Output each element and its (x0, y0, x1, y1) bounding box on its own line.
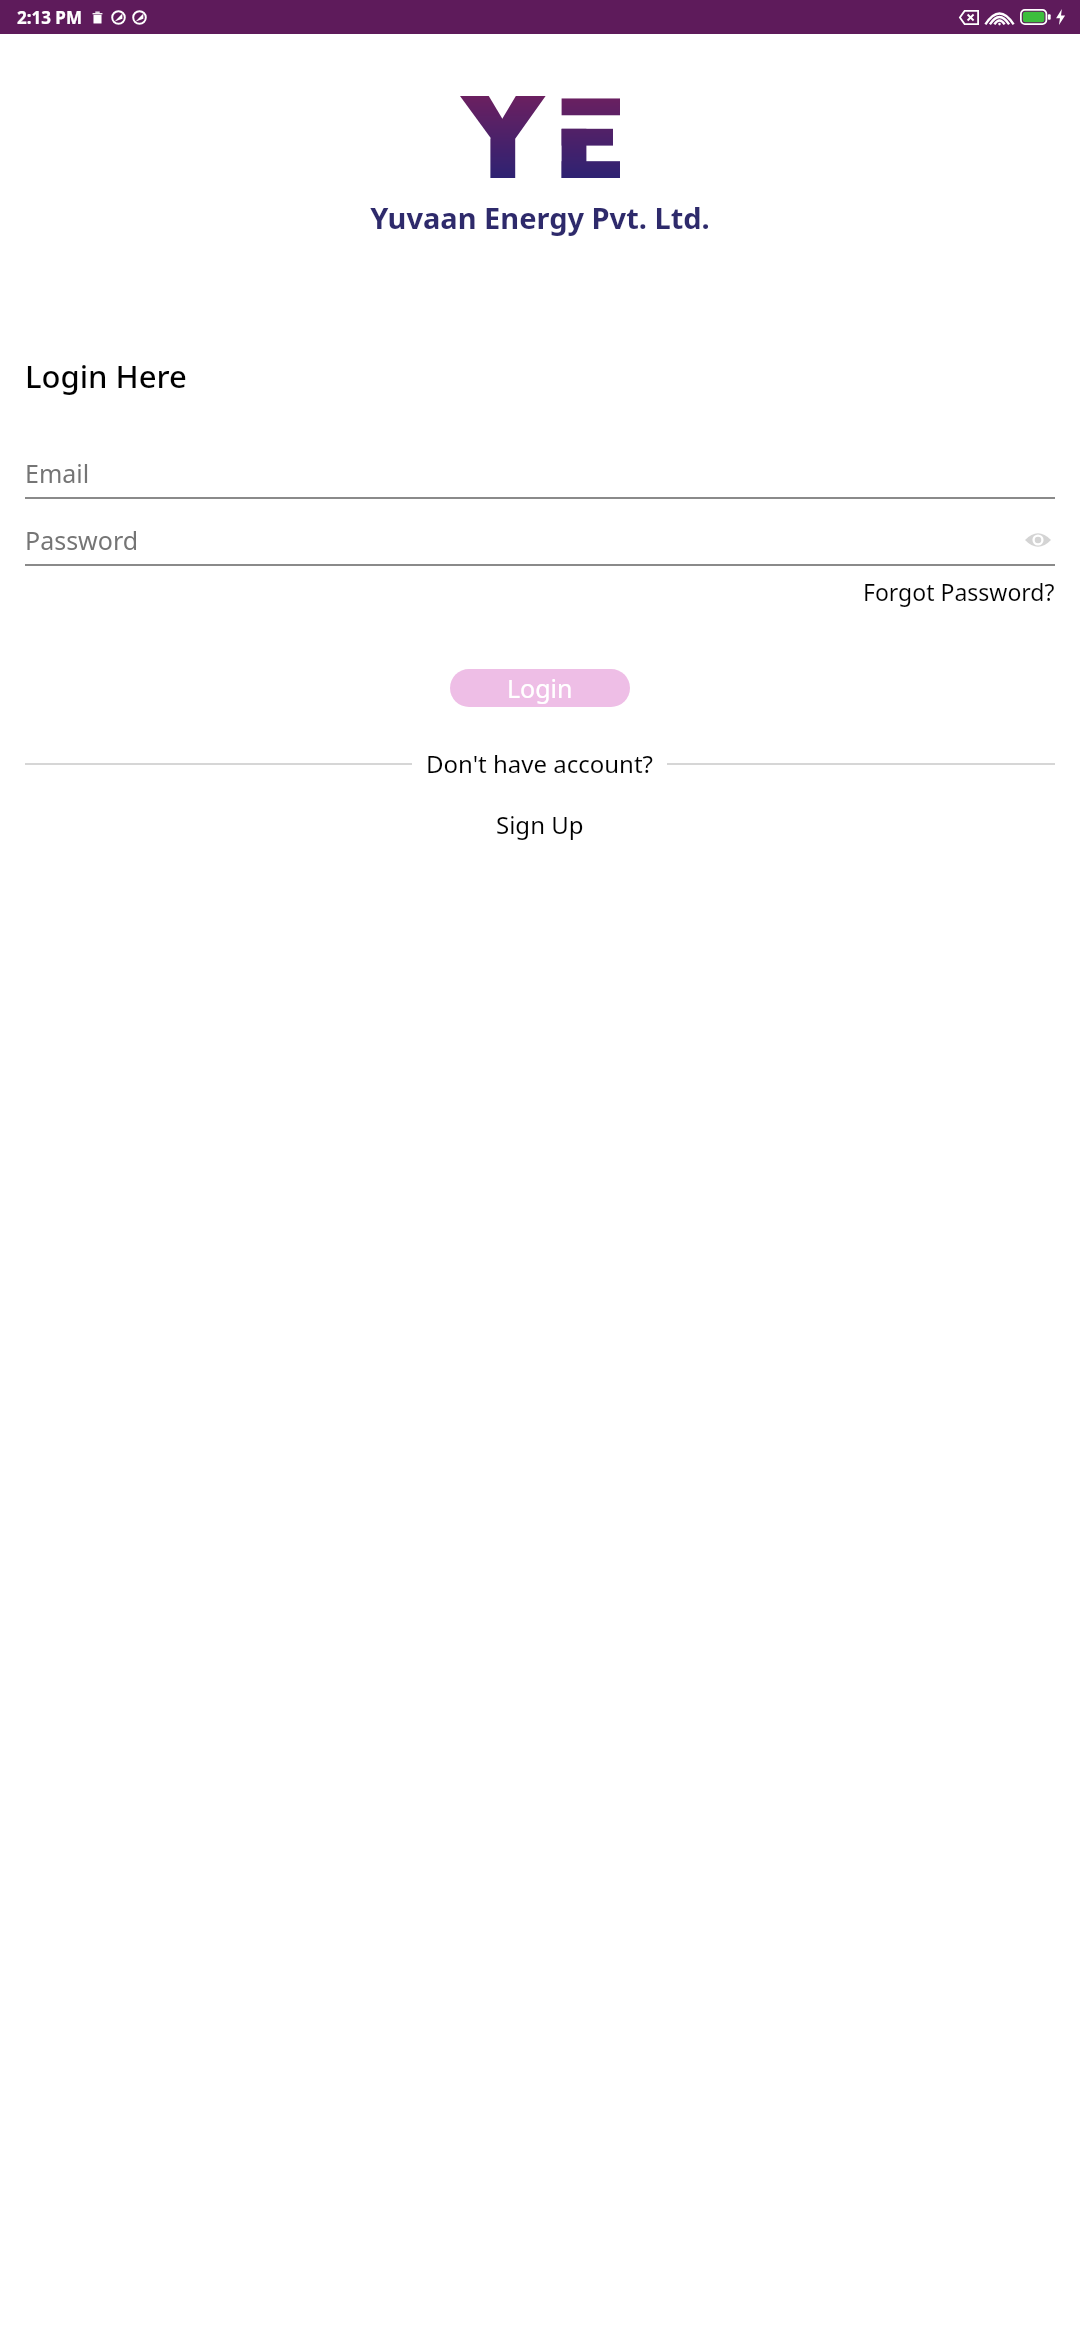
staticText: 2:13 PM (17, 6, 82, 29)
staticText: Yuvaan Energy Pvt. Ltd. (0, 198, 1080, 237)
staticText: Login (507, 671, 573, 705)
button[interactable]: Sign Up (480, 804, 600, 845)
staticText: Don't have account? (426, 747, 653, 780)
button[interactable]: Password (25, 516, 1055, 564)
staticText: Login Here (25, 355, 187, 397)
staticText: Sign Up (496, 808, 584, 841)
staticText: Email (25, 456, 90, 490)
button[interactable]: Show password (1021, 523, 1055, 557)
button[interactable]: Forgot Password? (863, 572, 1080, 611)
button[interactable]: Login (450, 669, 630, 707)
button[interactable]: Email (25, 449, 1055, 497)
staticText: Password (25, 523, 139, 557)
